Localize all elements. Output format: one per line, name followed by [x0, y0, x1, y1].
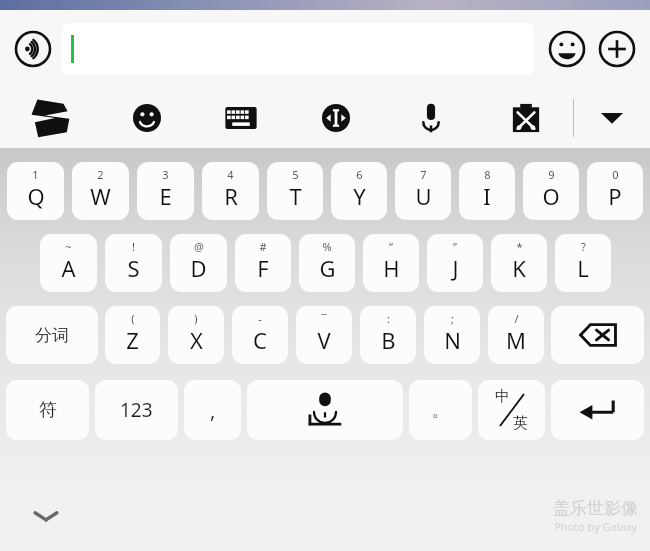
staticText: ; — [451, 311, 454, 326]
staticText: * — [516, 239, 523, 254]
button[interactable]: 1 — [7, 162, 64, 220]
staticText: ? — [581, 239, 586, 254]
staticText: C — [253, 325, 267, 355]
button[interactable]: ( — [105, 306, 160, 364]
staticText: I — [483, 181, 491, 211]
staticText: P — [608, 181, 622, 211]
staticText: Photo by Galaxy — [554, 519, 638, 534]
staticText: 盖乐世影像 — [553, 498, 638, 519]
staticText: , — [210, 397, 216, 424]
staticText: B — [381, 325, 396, 355]
staticText: 6 — [356, 167, 363, 182]
staticText: 中 — [495, 387, 510, 406]
button[interactable]: Emoji — [544, 26, 590, 72]
button[interactable]: 7 — [395, 162, 451, 220]
button[interactable]: @ — [170, 234, 227, 292]
button[interactable]: ! — [105, 234, 162, 292]
button[interactable]: “ — [363, 234, 419, 292]
button[interactable]: % — [299, 234, 355, 292]
staticText: T — [289, 181, 302, 211]
staticText: 3 — [162, 167, 169, 182]
other: Enter — [578, 396, 618, 424]
staticText: A — [61, 253, 76, 283]
staticText: Y — [353, 181, 366, 211]
staticText: G — [319, 253, 336, 283]
button[interactable]: * — [491, 234, 547, 292]
button[interactable]: Sogou — [0, 88, 100, 148]
button[interactable]: ; — [424, 306, 480, 364]
button[interactable]: 。 — [409, 380, 472, 440]
staticText: X — [190, 325, 203, 355]
other: Backspace — [579, 322, 617, 348]
staticText: ( — [131, 311, 135, 326]
button[interactable]: 123 — [95, 380, 178, 440]
button[interactable]: Emoticons — [100, 88, 194, 148]
staticText: 8 — [484, 167, 491, 182]
button[interactable]: Move cursor — [288, 88, 383, 148]
staticText: 2 — [97, 167, 104, 182]
staticText: L — [577, 253, 589, 283]
staticText: Z — [126, 325, 139, 355]
staticText: / — [514, 311, 519, 326]
other: Space, voice input — [296, 391, 354, 429]
button[interactable]: 3 — [137, 162, 194, 220]
staticText: 5 — [292, 167, 299, 182]
button[interactable]: - — [232, 306, 288, 364]
staticText: S — [127, 253, 140, 283]
button[interactable]: , — [184, 380, 241, 440]
staticText: ¯ — [321, 311, 327, 326]
button[interactable]: Clipboard — [478, 88, 573, 148]
staticText: D — [190, 253, 207, 283]
staticText: J — [452, 253, 459, 283]
button[interactable]: More — [594, 26, 640, 72]
button[interactable]: 符 — [6, 380, 89, 440]
staticText: W — [90, 181, 111, 211]
staticText: 0 — [612, 167, 619, 182]
staticText: O — [542, 181, 560, 211]
button[interactable]: Hide keyboard — [28, 498, 64, 534]
button[interactable]: 8 — [459, 162, 515, 220]
button[interactable]: 9 — [523, 162, 579, 220]
button[interactable]: 分词 — [6, 306, 98, 364]
button[interactable]: 2 — [72, 162, 129, 220]
staticText: ~ — [65, 239, 72, 254]
button[interactable]: # — [235, 234, 291, 292]
staticText: R — [224, 181, 238, 211]
button[interactable]: Collapse toolbar — [574, 88, 650, 148]
staticText: 4 — [227, 167, 234, 182]
button[interactable]: ) — [168, 306, 224, 364]
staticText: ” — [453, 239, 457, 254]
staticText: % — [322, 239, 332, 254]
button[interactable]: 4 — [202, 162, 259, 220]
staticText: 9 — [548, 167, 555, 182]
staticText: : — [387, 311, 390, 326]
staticText: K — [512, 253, 526, 283]
staticText: 1 — [32, 167, 39, 182]
staticText: 符 — [39, 399, 57, 422]
button[interactable]: 6 — [331, 162, 387, 220]
button[interactable]: ? — [555, 234, 611, 292]
staticText: 。 — [432, 400, 449, 421]
button[interactable]: Keyboard layout — [194, 88, 288, 148]
button[interactable]: 0 — [587, 162, 643, 220]
button[interactable]: ¯ — [296, 306, 352, 364]
staticText: V — [317, 325, 331, 355]
button[interactable]: ~ — [40, 234, 97, 292]
button[interactable] — [62, 23, 534, 75]
button[interactable]: ” — [427, 234, 483, 292]
staticText: E — [159, 181, 172, 211]
button[interactable]: Space, voice input — [247, 380, 403, 440]
button[interactable]: / — [488, 306, 544, 364]
staticText: # — [259, 239, 267, 254]
button[interactable]: 中 — [478, 380, 545, 440]
staticText: @ — [194, 239, 204, 254]
button[interactable]: Voice input — [10, 26, 56, 72]
button[interactable]: Enter — [551, 380, 644, 440]
staticText: 123 — [120, 397, 153, 423]
button[interactable]: : — [360, 306, 416, 364]
button[interactable]: Backspace — [551, 306, 644, 364]
staticText: Q — [27, 181, 45, 211]
staticText: M — [506, 325, 526, 355]
button[interactable]: 5 — [267, 162, 323, 220]
button[interactable]: Voice — [383, 88, 478, 148]
